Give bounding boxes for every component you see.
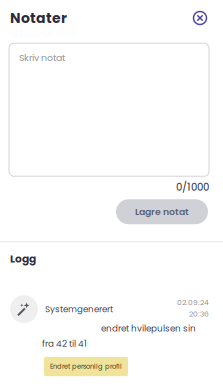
staticText: 20:36 — [189, 309, 209, 319]
staticText: fra 42 til 41 — [42, 337, 87, 350]
staticText: endret hvilepulsen sin — [101, 322, 196, 334]
staticText: Skriv notat — [19, 51, 65, 64]
staticText: Logg — [10, 251, 36, 266]
button[interactable]: Lukk — [193, 11, 207, 25]
staticText: 0/1000 — [176, 180, 209, 194]
staticText: Lagre notat — [135, 205, 189, 218]
button[interactable]: Lagre notat — [116, 199, 208, 224]
staticText: Notater — [10, 8, 67, 28]
staticText: 02.09.24 — [177, 297, 209, 308]
staticText: Endret personlig profil — [50, 362, 122, 371]
staticText: Systemgenerert — [45, 303, 113, 315]
